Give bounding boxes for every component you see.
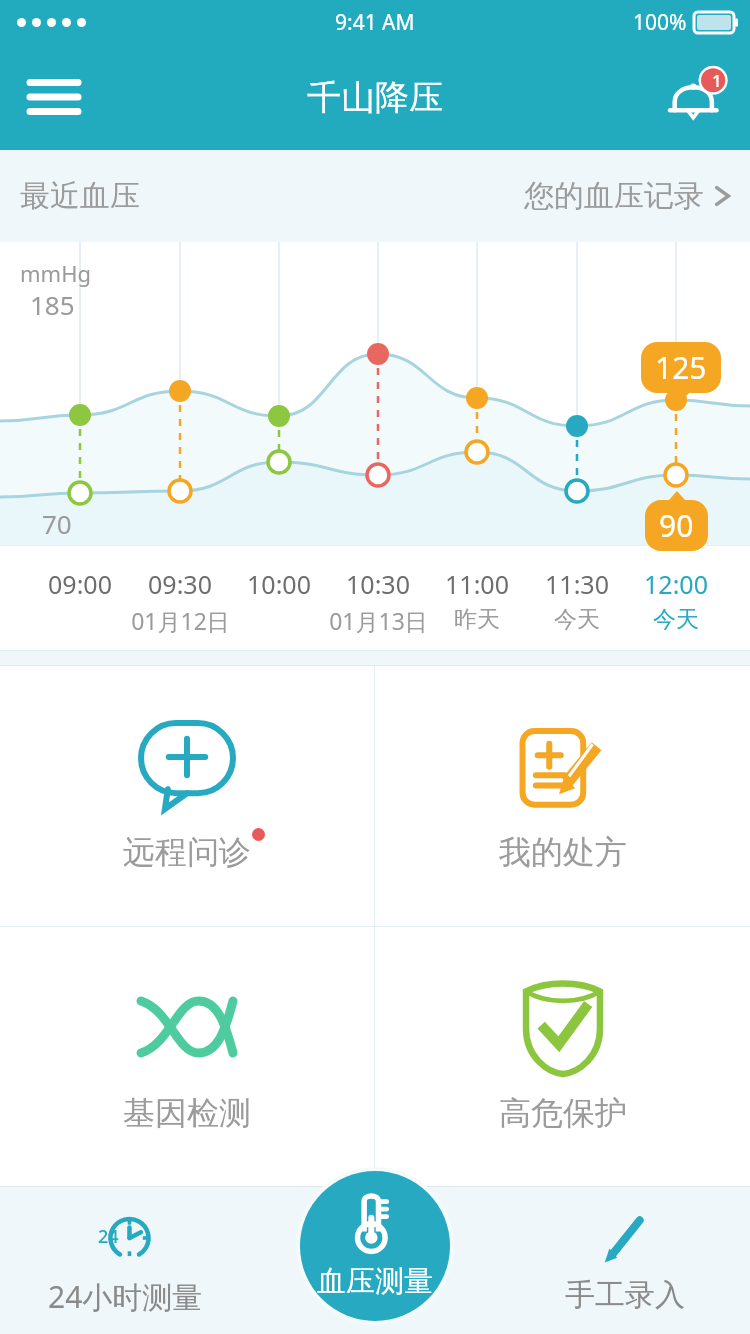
staticText: 最近血压	[20, 177, 140, 215]
staticText: 9:41 AM	[335, 8, 415, 37]
staticText: 昨天	[454, 605, 500, 634]
staticText: 125	[655, 347, 707, 388]
button[interactable]: Gene testing	[0, 927, 374, 1334]
staticText: 今天	[554, 605, 600, 634]
button[interactable]: High risk protection	[375, 927, 750, 1334]
staticText: 11:00	[445, 567, 509, 601]
staticText: 您的血压记录	[524, 177, 704, 215]
other: 24 hour measurement	[97, 1210, 153, 1266]
staticText: 11:30	[545, 567, 609, 601]
staticText: mmHg	[20, 258, 91, 288]
staticText: 手工录入	[565, 1276, 685, 1314]
button[interactable]: 血压测量	[300, 1171, 450, 1321]
other: My prescription	[517, 720, 609, 812]
staticText: 12:00	[644, 567, 708, 601]
staticText: 90	[659, 505, 694, 546]
other: Gene testing	[139, 997, 235, 1057]
staticText: 我的处方	[499, 832, 627, 872]
staticText: 24	[98, 1224, 119, 1249]
button[interactable]: Menu	[24, 67, 84, 127]
staticText: 1	[712, 69, 722, 92]
staticText: 10:30	[346, 567, 410, 601]
button[interactable]: 24 hour measurement	[0, 1186, 250, 1334]
button[interactable]: Notifications	[666, 66, 728, 128]
staticText: 基因检测	[123, 1093, 251, 1133]
staticText: 高危保护	[499, 1093, 627, 1133]
staticText: 100%	[633, 8, 687, 37]
staticText: 24小时测量	[48, 1276, 203, 1317]
button[interactable]: Remote consultation	[0, 666, 374, 926]
staticText: 01月12日	[131, 605, 230, 636]
other: High risk protection	[521, 979, 605, 1075]
other: Manual entry	[602, 1212, 648, 1264]
staticText: 今天	[653, 605, 699, 634]
staticText: 千山降压	[307, 76, 443, 119]
staticText: 70	[42, 506, 72, 541]
button[interactable]: 您的血压记录	[524, 177, 732, 215]
staticText: 10:00	[247, 567, 311, 601]
staticText: 01月13日	[329, 605, 428, 636]
button[interactable]: Manual entry	[500, 1186, 750, 1334]
staticText: 185	[30, 287, 75, 322]
staticText: 09:00	[48, 567, 112, 601]
button[interactable]: My prescription	[375, 666, 750, 926]
staticText: 远程问诊	[123, 832, 251, 872]
other: Remote consultation	[139, 721, 235, 811]
staticText: 09:30	[148, 567, 212, 601]
staticText: 血压测量	[317, 1263, 433, 1300]
